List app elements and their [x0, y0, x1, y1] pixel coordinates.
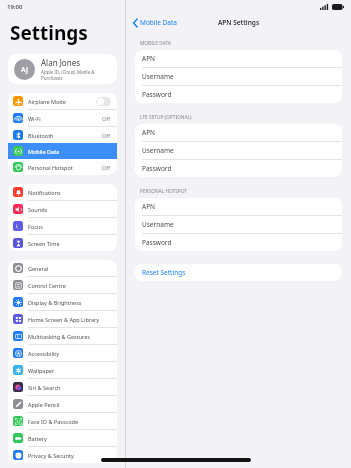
- staticText: Airplane Mode: [28, 98, 96, 105]
- staticText: APN: [142, 202, 156, 211]
- staticText: Privacy & Security: [28, 452, 111, 459]
- staticText: APN: [142, 128, 156, 137]
- button[interactable]: Home Screen & App Library: [8, 311, 117, 327]
- button[interactable]: General: [8, 260, 117, 276]
- staticText: Reset Settings: [142, 268, 186, 277]
- staticText: Password: [142, 238, 172, 247]
- button[interactable]: Reset Settings: [135, 264, 342, 281]
- staticText: Password: [142, 90, 172, 99]
- staticText: Mobile Data: [28, 148, 111, 155]
- staticText: 19:00: [7, 3, 23, 11]
- button[interactable]: Siri & Search: [8, 379, 117, 395]
- button[interactable]: APN: [135, 198, 342, 215]
- button[interactable]: Password: [135, 86, 342, 103]
- button[interactable]: AJ: [8, 54, 117, 84]
- button[interactable]: Battery: [8, 430, 117, 446]
- staticText: Wallpaper: [28, 367, 111, 374]
- staticText: APN: [142, 54, 156, 63]
- staticText: APN Settings: [218, 18, 260, 27]
- button[interactable]: Control Centre: [8, 277, 117, 293]
- button[interactable]: Password: [135, 160, 342, 177]
- button[interactable]: Wallpaper: [8, 362, 117, 378]
- button[interactable]: Username: [135, 142, 342, 159]
- button[interactable]: APN: [135, 124, 342, 141]
- staticText: LTE SETUP (OPTIONAL): [140, 114, 192, 121]
- staticText: AJ: [21, 65, 28, 75]
- staticText: Multitasking & Gestures: [28, 333, 111, 340]
- staticText: Password: [142, 164, 172, 173]
- button[interactable]: Wi-Fi: [8, 110, 117, 126]
- staticText: Alan Jones: [41, 57, 80, 68]
- button[interactable]: Accessibility: [8, 345, 117, 361]
- staticText: Siri & Search: [28, 384, 111, 391]
- staticText: Wi-Fi: [28, 115, 102, 122]
- button[interactable]: Bluetooth: [8, 127, 117, 143]
- other: Back: [133, 19, 138, 27]
- staticText: Off: [102, 164, 111, 171]
- staticText: Face ID & Passcode: [28, 418, 111, 425]
- button[interactable]: Airplane Mode: [8, 93, 117, 109]
- button[interactable]: Back: [133, 18, 177, 27]
- button[interactable]: Screen Time: [8, 235, 117, 251]
- button[interactable]: Username: [135, 68, 342, 85]
- staticText: PERSONAL HOTSPOT: [140, 188, 188, 195]
- staticText: Screen Time: [28, 240, 111, 247]
- staticText: Username: [142, 72, 174, 81]
- staticText: Focus: [28, 223, 111, 230]
- staticText: Off: [102, 115, 111, 122]
- button[interactable]: Username: [135, 216, 342, 233]
- staticText: Apple ID, iCloud, Media & Purchases: [41, 69, 111, 81]
- staticText: Notifications: [28, 189, 111, 196]
- staticText: Sounds: [28, 206, 111, 213]
- button[interactable]: APN: [135, 50, 342, 67]
- staticText: Apple Pencil: [28, 401, 111, 408]
- button[interactable]: Multitasking & Gestures: [8, 328, 117, 344]
- button[interactable]: Apple Pencil: [8, 396, 117, 412]
- button[interactable]: Display & Brightness: [8, 294, 117, 310]
- staticText: Off: [102, 132, 111, 139]
- staticText: MOBILE DATA: [140, 40, 171, 47]
- button[interactable]: Mobile Data: [8, 143, 117, 159]
- button[interactable]: Password: [135, 234, 342, 251]
- button[interactable]: Personal Hotspot: [8, 159, 117, 175]
- button[interactable]: Notifications: [8, 184, 117, 200]
- staticText: General: [28, 265, 111, 272]
- button[interactable]: Face ID & Passcode: [8, 413, 117, 429]
- staticText: Username: [142, 146, 174, 155]
- staticText: Settings: [10, 20, 88, 46]
- staticText: Bluetooth: [28, 132, 102, 139]
- staticText: Battery: [28, 435, 111, 442]
- staticText: Username: [142, 220, 174, 229]
- staticText: Mobile Data: [140, 18, 177, 27]
- staticText: Personal Hotspot: [28, 164, 102, 171]
- button[interactable]: Focus: [8, 218, 117, 234]
- staticText: Control Centre: [28, 282, 111, 289]
- button[interactable]: Sounds: [8, 201, 117, 217]
- staticText: Home Screen & App Library: [28, 316, 111, 323]
- staticText: Display & Brightness: [28, 299, 111, 306]
- staticText: Accessibility: [28, 350, 111, 357]
- button[interactable]: Privacy & Security: [8, 447, 117, 463]
